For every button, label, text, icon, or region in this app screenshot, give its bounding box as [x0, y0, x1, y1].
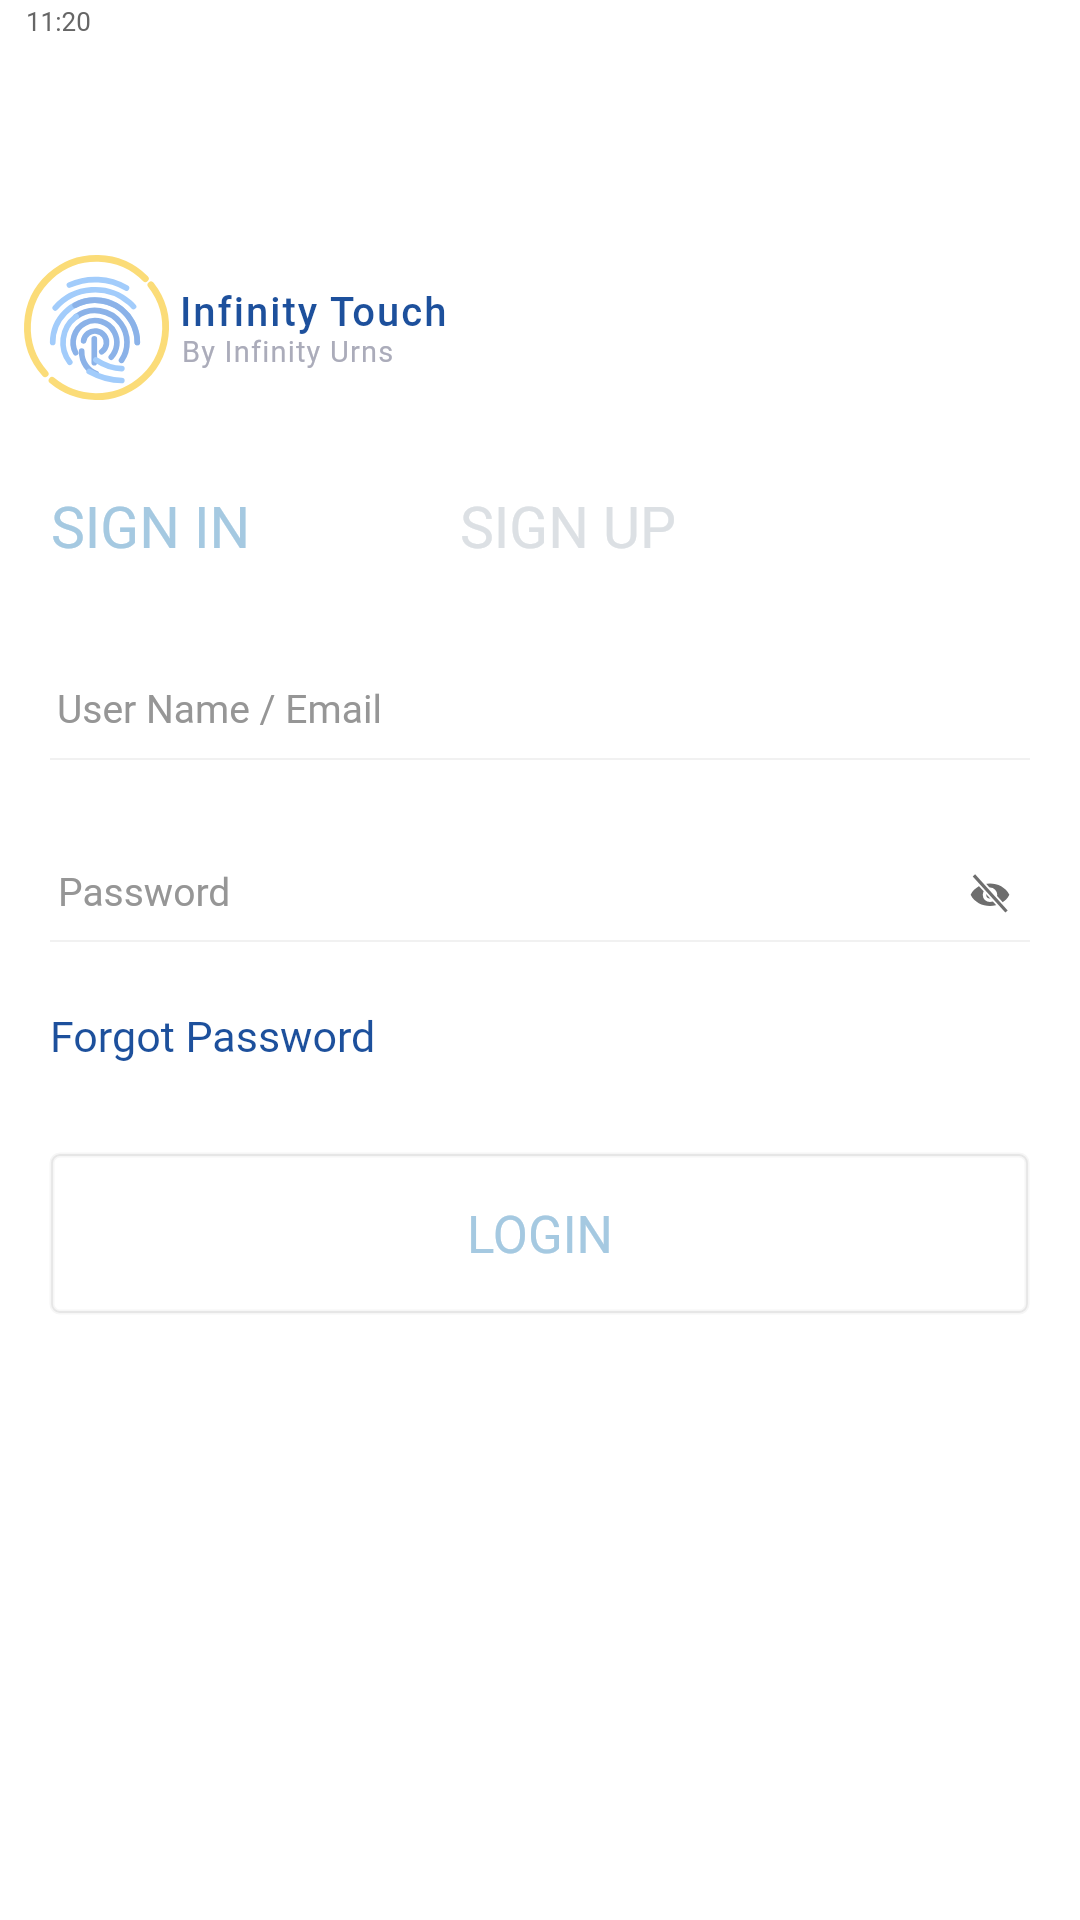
button[interactable]: User Name / Email — [50, 672, 1030, 760]
button[interactable]: SIGN IN — [20, 486, 420, 570]
staticText: Forgot Password — [50, 1012, 376, 1062]
button[interactable]: SIGN UP — [430, 486, 710, 570]
button[interactable]: Forgot Password — [36, 1000, 456, 1074]
button[interactable]: Password — [50, 855, 940, 942]
staticText: SIGN IN — [51, 495, 251, 562]
staticText: SIGN UP — [460, 495, 676, 562]
button[interactable]: Show password — [966, 869, 1014, 917]
staticText: Infinity Touch — [180, 289, 449, 336]
staticText: 11:20 — [26, 7, 91, 37]
button[interactable]: LOGIN — [52, 1155, 1027, 1312]
staticText: LOGIN — [467, 1206, 613, 1266]
staticText: User Name / Email — [57, 687, 382, 733]
staticText: Password — [58, 870, 231, 916]
staticText: By Infinity Urns — [182, 335, 395, 369]
